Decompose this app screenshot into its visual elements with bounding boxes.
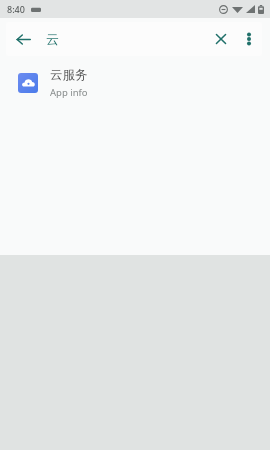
button[interactable]: Clear search <box>206 24 236 54</box>
staticText: App info <box>50 86 88 99</box>
button[interactable]: 云服务 <box>0 60 270 106</box>
staticText: 云服务 <box>50 67 88 83</box>
button[interactable]: More options <box>236 26 262 52</box>
staticText: 8:40 <box>7 3 25 15</box>
staticText: 云 <box>46 31 59 47</box>
button[interactable]: Back <box>6 22 40 56</box>
